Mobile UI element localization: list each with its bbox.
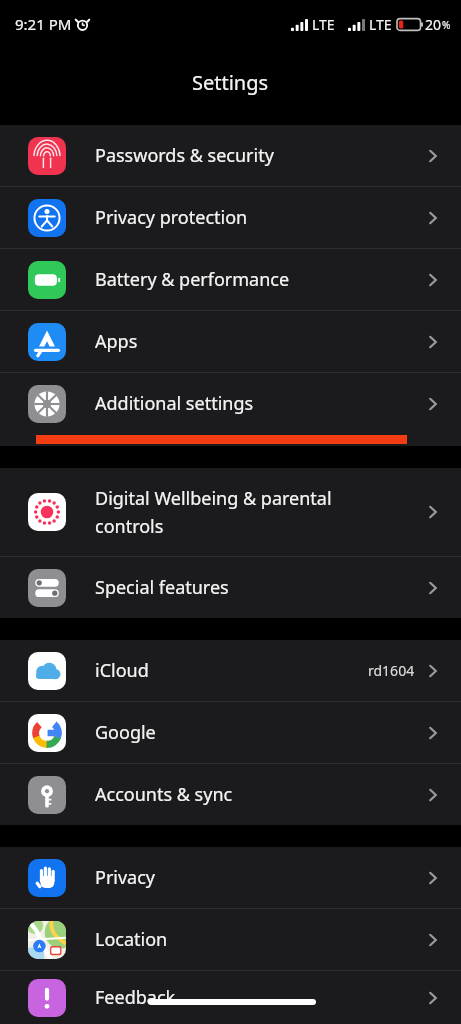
button[interactable]: Apps [0, 311, 461, 372]
staticText: Accounts & sync [95, 782, 423, 807]
button[interactable]: Passwords & security [0, 125, 461, 186]
staticText: controls [95, 514, 164, 539]
staticText: Feedback [95, 985, 423, 1010]
staticText: Special features [95, 575, 423, 600]
button[interactable]: Feedback [0, 971, 461, 1024]
staticText: 20 [425, 15, 442, 34]
staticText: % [442, 18, 451, 32]
staticText: LTE [369, 15, 392, 34]
staticText: 9:21 PM [15, 14, 72, 34]
staticText: Privacy [95, 865, 423, 890]
button[interactable]: iCloud [0, 640, 461, 701]
button[interactable]: Location [0, 909, 461, 970]
button[interactable]: Privacy protection [0, 187, 461, 248]
staticText: iCloud [95, 658, 368, 683]
staticText: Battery & performance [95, 267, 423, 292]
staticText: Digital Wellbeing & parental [95, 486, 332, 511]
staticText: LTE [312, 15, 335, 34]
button[interactable]: Digital Wellbeing & parental [0, 468, 461, 556]
button[interactable]: Privacy [0, 847, 461, 908]
button[interactable]: Battery & performance [0, 249, 461, 310]
button[interactable]: Additional settings [0, 373, 461, 434]
staticText: rd1604 [368, 661, 415, 680]
staticText: Privacy protection [95, 205, 423, 230]
staticText: Settings [192, 69, 269, 96]
staticText: Location [95, 927, 423, 952]
button[interactable]: Google [0, 702, 461, 763]
button[interactable]: Special features [0, 557, 461, 618]
staticText: Google [95, 720, 423, 745]
button[interactable]: Accounts & sync [0, 764, 461, 825]
staticText: Apps [95, 329, 423, 354]
staticText: Additional settings [95, 391, 423, 416]
staticText: Passwords & security [95, 143, 423, 168]
